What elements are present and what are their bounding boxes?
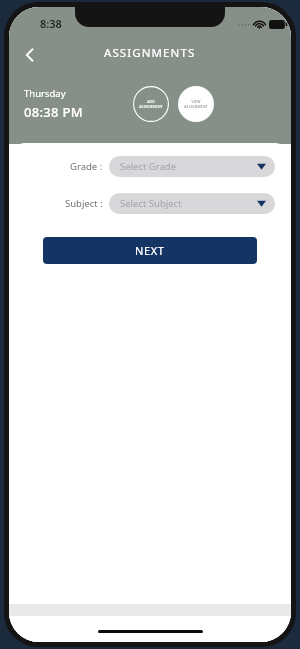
staticText: ASSIGNMENT bbox=[139, 104, 163, 109]
button[interactable]: Select Subject bbox=[109, 193, 275, 214]
staticText: ADD bbox=[147, 99, 155, 104]
staticText: Grade : bbox=[70, 160, 103, 173]
staticText: ASSIGNMENTS bbox=[104, 45, 196, 61]
staticText: VIEW bbox=[191, 99, 201, 104]
staticText: 8:38 bbox=[40, 16, 62, 31]
staticText: NEXT bbox=[135, 243, 165, 258]
staticText: Select Grade bbox=[120, 160, 177, 173]
staticText: 08:38 PM bbox=[24, 103, 83, 121]
staticText: ASSIGNMENT bbox=[184, 104, 208, 109]
button[interactable]: ADD ASSIGNMENT bbox=[133, 86, 169, 122]
button[interactable]: Select Grade bbox=[109, 156, 275, 177]
staticText: Subject : bbox=[65, 197, 103, 210]
button[interactable]: NEXT bbox=[43, 237, 257, 264]
button[interactable]: Back bbox=[13, 38, 47, 72]
staticText: Thursday bbox=[24, 87, 66, 100]
button[interactable]: VIEW ASSIGNMENT bbox=[178, 86, 214, 122]
staticText: Select Subject bbox=[120, 197, 182, 210]
